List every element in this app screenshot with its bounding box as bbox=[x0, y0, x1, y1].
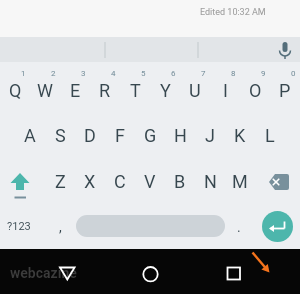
staticText: R bbox=[99, 80, 111, 101]
staticText: 6 bbox=[171, 69, 176, 78]
staticText: 3 bbox=[81, 69, 86, 78]
button[interactable]: E bbox=[60, 67, 90, 113]
button[interactable] bbox=[76, 215, 225, 237]
button[interactable] bbox=[262, 211, 293, 242]
button[interactable]: A bbox=[15, 112, 45, 158]
staticText: 7 bbox=[201, 69, 206, 78]
staticText: L bbox=[265, 125, 275, 146]
button[interactable]: T bbox=[120, 67, 150, 113]
button[interactable]: K bbox=[225, 112, 255, 158]
staticText: 0 bbox=[291, 69, 296, 78]
staticText: Q bbox=[9, 80, 22, 101]
staticText: A bbox=[24, 125, 36, 146]
staticText: G bbox=[144, 125, 157, 146]
staticText: B bbox=[174, 171, 186, 192]
staticText: N bbox=[204, 171, 217, 192]
button[interactable]: J bbox=[195, 112, 225, 158]
button[interactable] bbox=[130, 255, 170, 291]
button[interactable]: P bbox=[270, 67, 300, 113]
staticText: 2 bbox=[51, 69, 56, 78]
staticText: S bbox=[55, 125, 66, 146]
staticText: Z bbox=[55, 171, 66, 192]
button[interactable]: , bbox=[45, 204, 75, 249]
button[interactable]: O bbox=[240, 67, 270, 113]
button[interactable]: ?123 bbox=[0, 204, 38, 249]
staticText: Y bbox=[160, 80, 171, 101]
staticText: . bbox=[237, 219, 241, 235]
button[interactable]: G bbox=[135, 112, 165, 158]
button[interactable]: S bbox=[45, 112, 75, 158]
staticText: O bbox=[249, 80, 262, 101]
staticText: F bbox=[115, 125, 125, 146]
button[interactable] bbox=[255, 158, 300, 204]
staticText: E bbox=[70, 80, 81, 101]
staticText: C bbox=[114, 171, 126, 192]
button[interactable]: L bbox=[255, 112, 285, 158]
button[interactable] bbox=[47, 255, 87, 291]
staticText: W bbox=[37, 80, 53, 101]
staticText: U bbox=[189, 80, 201, 101]
staticText: Edited 10:32 AM bbox=[200, 7, 266, 18]
staticText: ?123 bbox=[7, 220, 31, 233]
staticText: M bbox=[232, 171, 248, 192]
staticText: D bbox=[84, 125, 96, 146]
staticText: H bbox=[174, 125, 187, 146]
staticText: V bbox=[144, 171, 156, 192]
button[interactable] bbox=[0, 158, 45, 204]
staticText: webcazine bbox=[10, 265, 77, 281]
button[interactable]: Z bbox=[45, 158, 75, 204]
button[interactable]: V bbox=[135, 158, 165, 204]
staticText: X bbox=[84, 171, 96, 192]
button[interactable]: Y bbox=[150, 67, 180, 113]
staticText: , bbox=[59, 219, 62, 235]
button[interactable]: Q bbox=[0, 67, 30, 113]
button[interactable]: I bbox=[210, 67, 240, 113]
staticText: 9 bbox=[261, 69, 266, 78]
button[interactable] bbox=[0, 37, 300, 62]
staticText: I bbox=[223, 80, 228, 101]
button[interactable]: W bbox=[30, 67, 60, 113]
button[interactable] bbox=[213, 255, 253, 291]
staticText: P bbox=[279, 80, 291, 101]
staticText: K bbox=[234, 125, 246, 146]
staticText: 1 bbox=[21, 69, 26, 78]
button[interactable]: . bbox=[225, 204, 252, 249]
button[interactable]: C bbox=[105, 158, 135, 204]
button[interactable]: H bbox=[165, 112, 195, 158]
staticText: J bbox=[205, 125, 215, 146]
staticText: 8 bbox=[231, 69, 236, 78]
button[interactable]: D bbox=[75, 112, 105, 158]
button[interactable]: F bbox=[105, 112, 135, 158]
button[interactable]: B bbox=[165, 158, 195, 204]
button[interactable]: M bbox=[225, 158, 255, 204]
button[interactable]: U bbox=[180, 67, 210, 113]
button[interactable]: N bbox=[195, 158, 225, 204]
button[interactable]: X bbox=[75, 158, 105, 204]
staticText: 5 bbox=[141, 69, 146, 78]
staticText: 4 bbox=[111, 69, 116, 78]
button[interactable]: R bbox=[90, 67, 120, 113]
staticText: T bbox=[130, 80, 141, 101]
